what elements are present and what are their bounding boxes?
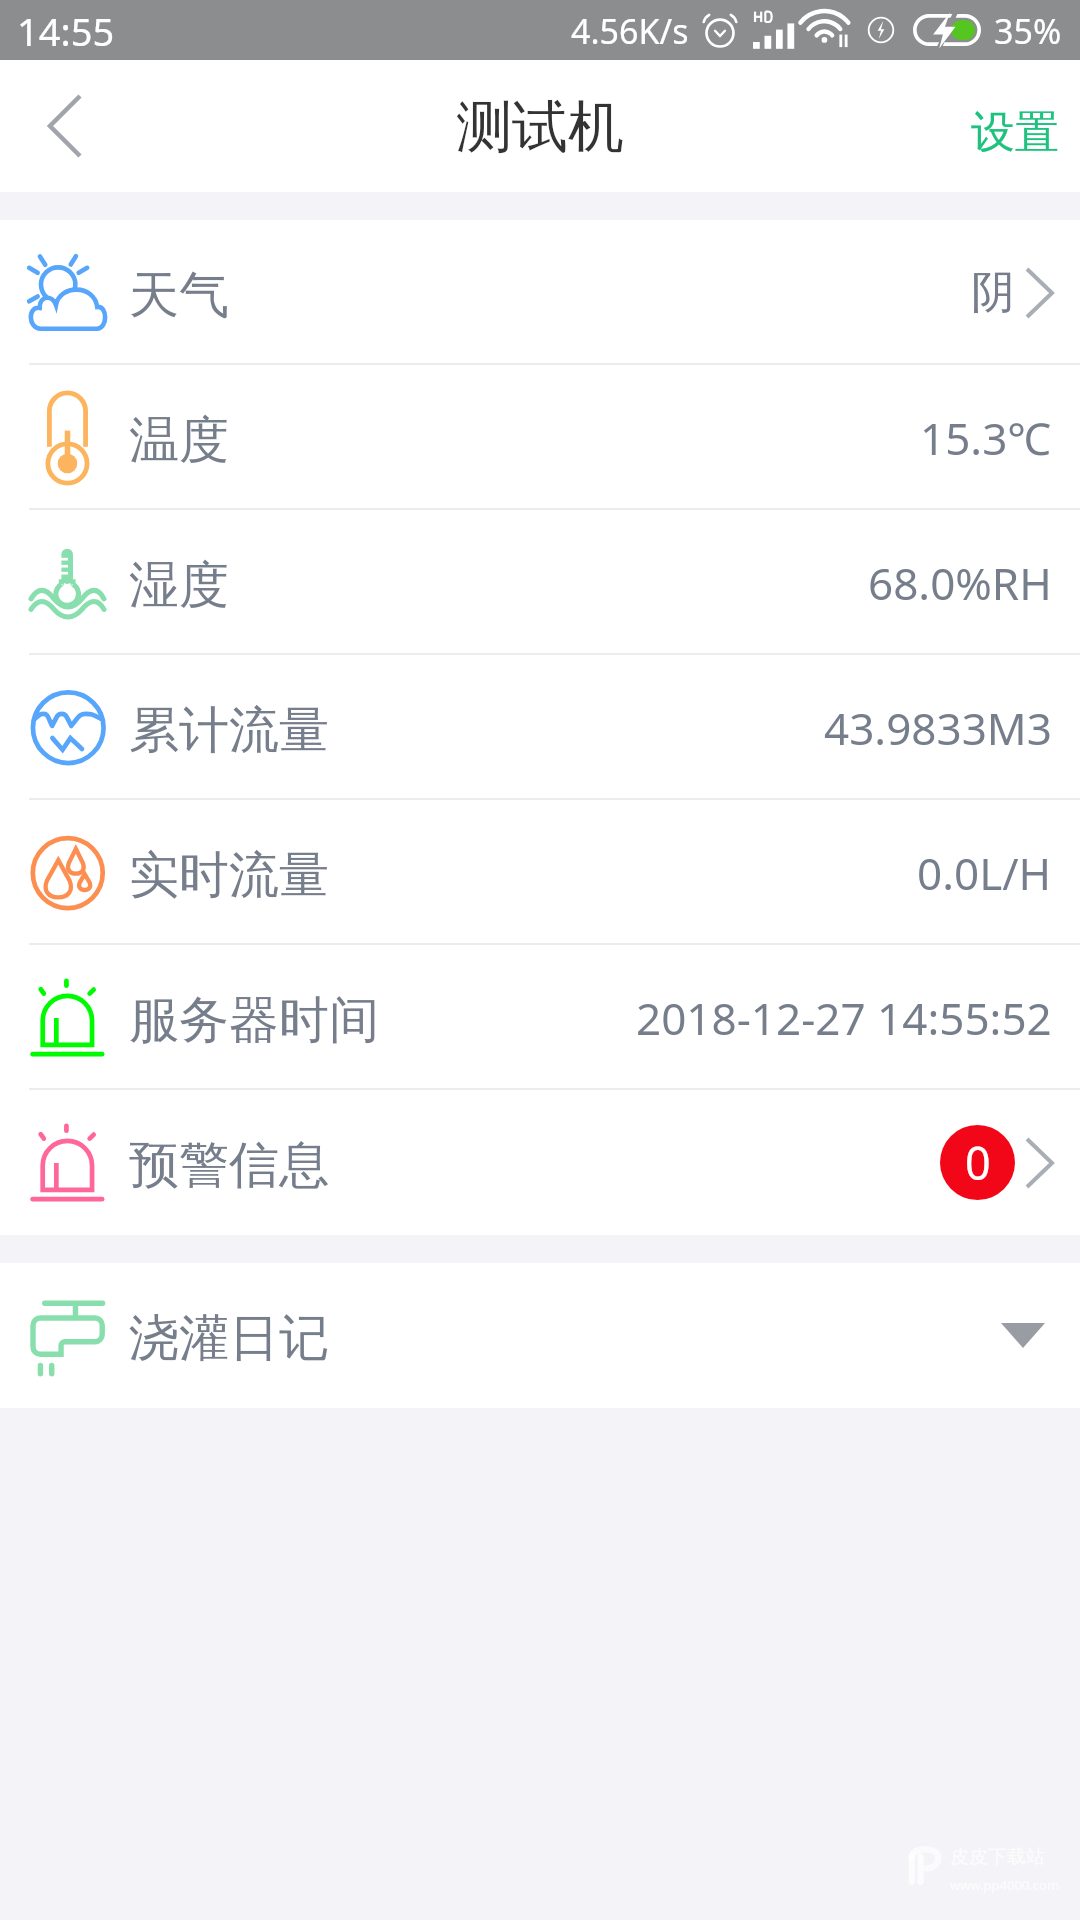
staticText: 测试机 <box>456 92 624 163</box>
staticText: 服务器时间 <box>129 989 379 1052</box>
staticText: 0.0L/H <box>917 843 1052 903</box>
button[interactable]: 设置 <box>946 60 1080 192</box>
staticText: 天气 <box>129 264 229 327</box>
staticText: 35% <box>994 8 1062 54</box>
staticText: 阴 <box>971 265 1015 320</box>
staticText: 0 <box>965 1132 991 1193</box>
button[interactable]: 服务器时间 <box>0 945 1080 1090</box>
button[interactable]: 浇灌日记 <box>0 1263 1080 1408</box>
button[interactable]: Back <box>0 60 120 192</box>
staticText: 43.9833M3 <box>824 698 1052 758</box>
staticText: 2018-12-27 14:55:52 <box>636 988 1052 1048</box>
staticText: 湿度 <box>129 554 229 617</box>
staticText: 设置 <box>971 105 1059 160</box>
button[interactable]: 实时流量 <box>0 800 1080 945</box>
staticText: 15.3℃ <box>920 408 1052 468</box>
button[interactable]: 湿度 <box>0 510 1080 655</box>
staticText: 温度 <box>129 409 229 472</box>
button[interactable]: 累计流量 <box>0 655 1080 800</box>
staticText: 14:55 <box>17 5 115 57</box>
button[interactable]: 预警信息 <box>0 1090 1080 1235</box>
staticText: 浇灌日记 <box>129 1307 329 1370</box>
staticText: 4.56K/s <box>571 8 689 54</box>
staticText: 实时流量 <box>129 844 329 907</box>
button[interactable]: 天气 <box>0 220 1080 365</box>
staticText: 68.0%RH <box>868 553 1052 613</box>
staticText: 累计流量 <box>129 699 329 762</box>
staticText: 预警信息 <box>129 1134 329 1197</box>
button[interactable]: 温度 <box>0 365 1080 510</box>
